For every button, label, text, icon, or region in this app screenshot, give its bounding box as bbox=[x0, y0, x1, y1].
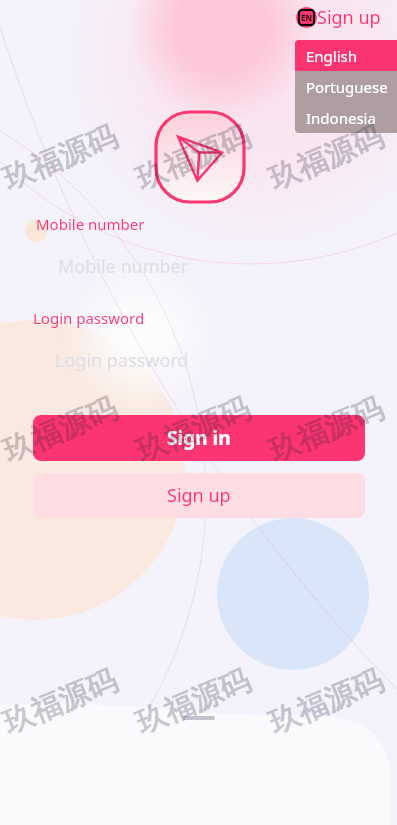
staticText: 玖福源码 bbox=[263, 661, 389, 742]
staticText: 玖福源码 bbox=[130, 389, 256, 470]
staticText: 玖福源码 bbox=[0, 389, 123, 470]
staticText: Sign up bbox=[317, 5, 381, 30]
staticText: Mobile number bbox=[36, 214, 145, 234]
button[interactable]: English bbox=[295, 40, 397, 71]
button[interactable]: Sign up bbox=[33, 473, 365, 518]
button[interactable]: Language bbox=[296, 5, 381, 30]
staticText: Sign up bbox=[167, 483, 231, 508]
staticText: 玖福源码 bbox=[263, 389, 389, 470]
staticText: Portuguese bbox=[306, 77, 388, 97]
staticText: 玖福源码 bbox=[130, 117, 256, 198]
other: Language bbox=[296, 7, 317, 28]
staticText: Login password bbox=[33, 308, 145, 328]
staticText: Indonesia bbox=[306, 108, 376, 128]
staticText: EN bbox=[301, 12, 312, 23]
button[interactable]: Portuguese bbox=[295, 71, 397, 102]
staticText: Sign in bbox=[167, 425, 231, 451]
staticText: 玖福源码 bbox=[0, 661, 123, 742]
staticText: Login password bbox=[55, 348, 189, 373]
staticText: 玖福源码 bbox=[0, 117, 123, 198]
staticText: 玖福源码 bbox=[263, 117, 389, 198]
staticText: Mobile number bbox=[58, 254, 189, 279]
staticText: English bbox=[306, 46, 358, 66]
button[interactable]: Sign in bbox=[33, 415, 365, 461]
staticText: 玖福源码 bbox=[130, 661, 256, 742]
button[interactable]: Indonesia bbox=[295, 102, 397, 133]
